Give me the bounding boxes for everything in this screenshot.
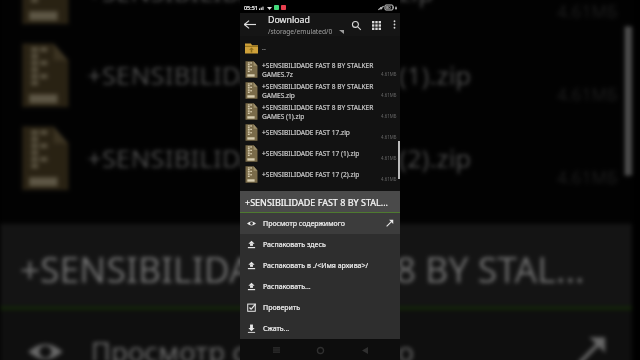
button[interactable]: +SENSIBILIDADE FAST 17.zip	[240, 122, 400, 143]
staticText: Просмотр содержимого	[91, 334, 573, 360]
button[interactable]: Home	[311, 341, 329, 359]
staticText: +SENSIBILIDADE FAST 17 (1).zip	[262, 149, 379, 158]
staticText: 4.61МБ	[381, 155, 397, 161]
staticText: 1589037100_vivacut-v1_4_1-mod-	[262, 191, 395, 200]
button[interactable]: 1589037100_vivacut-v1_4_1-mod-	[240, 185, 400, 206]
staticText: Распаковать здесь	[263, 240, 400, 250]
staticText: 80	[386, 5, 391, 10]
button[interactable]: +SENSIBILIDADE FAST 17.zip	[0, 0, 632, 34]
staticText: 4.61МБ	[557, 81, 620, 105]
button[interactable]: More options	[385, 15, 400, 34]
staticText: +SENSIBILIDADE FAST 17 (1).zip	[87, 57, 549, 93]
staticText: Проверить	[263, 303, 400, 313]
staticText: 4.61МБ	[381, 134, 397, 140]
staticText: /storage/emulated/0	[268, 27, 333, 36]
button[interactable]: ..	[240, 36, 400, 59]
staticText: Download	[268, 14, 310, 26]
staticText: 4.61МБ	[381, 176, 397, 182]
staticText: +SENSIBILIDADE FAST 17.zip	[87, 0, 549, 10]
staticText: 4.61МБ	[381, 113, 397, 119]
button[interactable]: Просмотр содержимого	[240, 213, 400, 234]
staticText: +SENSIBILIDADE FAST 8 BY STALKER GAMES (…	[262, 103, 379, 121]
staticText: +SENSIBILIDADE FAST 17.zip	[262, 128, 379, 137]
staticText: +SENSIBILIDADE FAST 17 (2).zip	[87, 140, 549, 176]
button[interactable]: +SENSIBILIDADE FAST 8 BY STALKER GAMES.z…	[240, 80, 400, 101]
button[interactable]: Grid view	[366, 15, 386, 35]
button[interactable]: Search	[346, 15, 366, 35]
staticText: Распаковать в ./<Имя архива>/	[263, 261, 400, 271]
button[interactable]: Recents	[267, 341, 285, 359]
staticText: 05:51	[244, 4, 258, 11]
staticText: 4.61МБ	[381, 71, 397, 77]
button[interactable]: +SENSIBILIDADE FAST 8 BY STALKER GAMES (…	[240, 101, 400, 122]
button[interactable]: 1589037100_vivacut-v1_4_1-mod-	[0, 200, 632, 283]
button[interactable]: +SENSIBILIDADE FAST 17 (2).zip	[0, 117, 632, 200]
staticText: ..	[262, 43, 266, 53]
button[interactable]: Проверить	[240, 297, 400, 318]
staticText: +SENSIBILIDADE FAST 17 (2).zip	[262, 170, 379, 179]
button[interactable]: +SENSIBILIDADE FAST 17 (1).zip	[0, 34, 632, 117]
staticText: 4.61МБ	[381, 92, 397, 98]
staticText: Распаковать...	[263, 282, 400, 292]
button[interactable]: Распаковать в ./<Имя архива>/	[240, 255, 400, 276]
staticText: +SENSIBILIDADE FAST 8 BY STAL...	[20, 243, 585, 291]
button[interactable]: Распаковать здесь	[240, 234, 400, 255]
button[interactable]: Back	[356, 341, 374, 359]
staticText: +SENSIBILIDADE FAST 8 BY STALKER GAMES.7…	[262, 61, 379, 79]
button[interactable]: +SENSIBILIDADE FAST 17 (1).zip	[240, 143, 400, 164]
staticText: 4.61МБ	[557, 164, 620, 188]
staticText: 1589037100_vivacut-v1_4_1-mod-	[87, 223, 612, 259]
staticText: +SENSIBILIDADE FAST 8 BY STALKER GAMES.z…	[262, 82, 379, 100]
button[interactable]: +SENSIBILIDADE FAST 17 (2).zip	[240, 164, 400, 185]
staticText: Сжать...	[263, 324, 400, 334]
button[interactable]: Сжать...	[240, 318, 400, 339]
button[interactable]: Back	[240, 14, 260, 35]
button[interactable]: +SENSIBILIDADE FAST 8 BY STALKER GAMES.7…	[240, 59, 400, 80]
staticText: Просмотр содержимого	[263, 219, 385, 229]
staticText: +SENSIBILIDADE FAST 8 BY STAL...	[245, 196, 388, 208]
button[interactable]: Распаковать...	[240, 276, 400, 297]
button[interactable]: Просмотр содержимого	[0, 310, 632, 360]
staticText: 4.61МБ	[557, 0, 620, 22]
